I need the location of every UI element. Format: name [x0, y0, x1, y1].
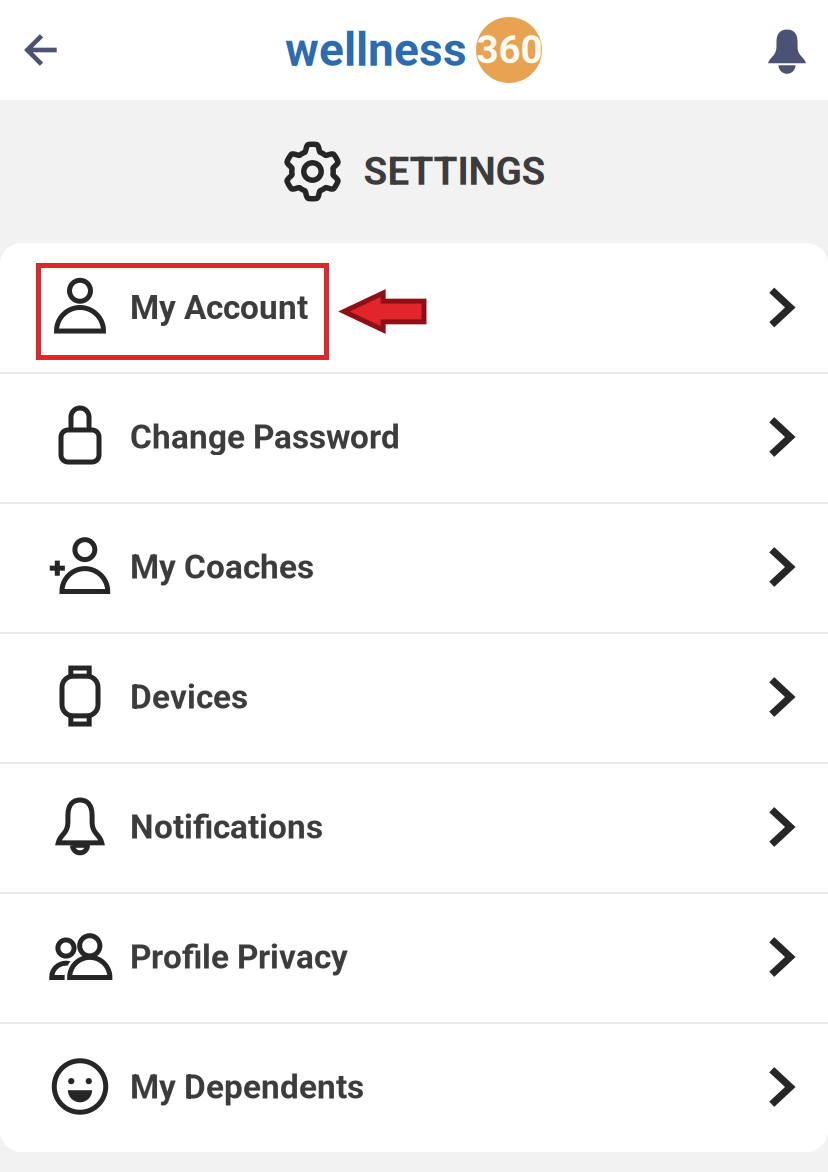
staticText: Change Password [130, 417, 400, 457]
staticText: My Coaches [130, 547, 314, 587]
button[interactable]: Notifications [0, 762, 828, 892]
button[interactable]: Devices [0, 632, 828, 762]
button[interactable]: My Dependents [0, 1022, 828, 1152]
button[interactable]: Change Password [0, 372, 828, 502]
button[interactable]: Profile Privacy [0, 892, 828, 1022]
button[interactable]: My Account [0, 243, 828, 372]
button[interactable]: Notifications [746, 0, 828, 100]
staticText: My Dependents [130, 1067, 364, 1107]
staticText: wellness [285, 23, 467, 77]
staticText: 360 [476, 27, 542, 73]
staticText: Devices [130, 677, 248, 717]
staticText: SETTINGS [363, 149, 545, 194]
staticText: Profile Privacy [130, 937, 348, 977]
staticText: My Account [130, 288, 308, 327]
button[interactable]: Back [0, 0, 84, 100]
staticText: Notifications [130, 807, 323, 847]
button[interactable]: My Coaches [0, 502, 828, 632]
